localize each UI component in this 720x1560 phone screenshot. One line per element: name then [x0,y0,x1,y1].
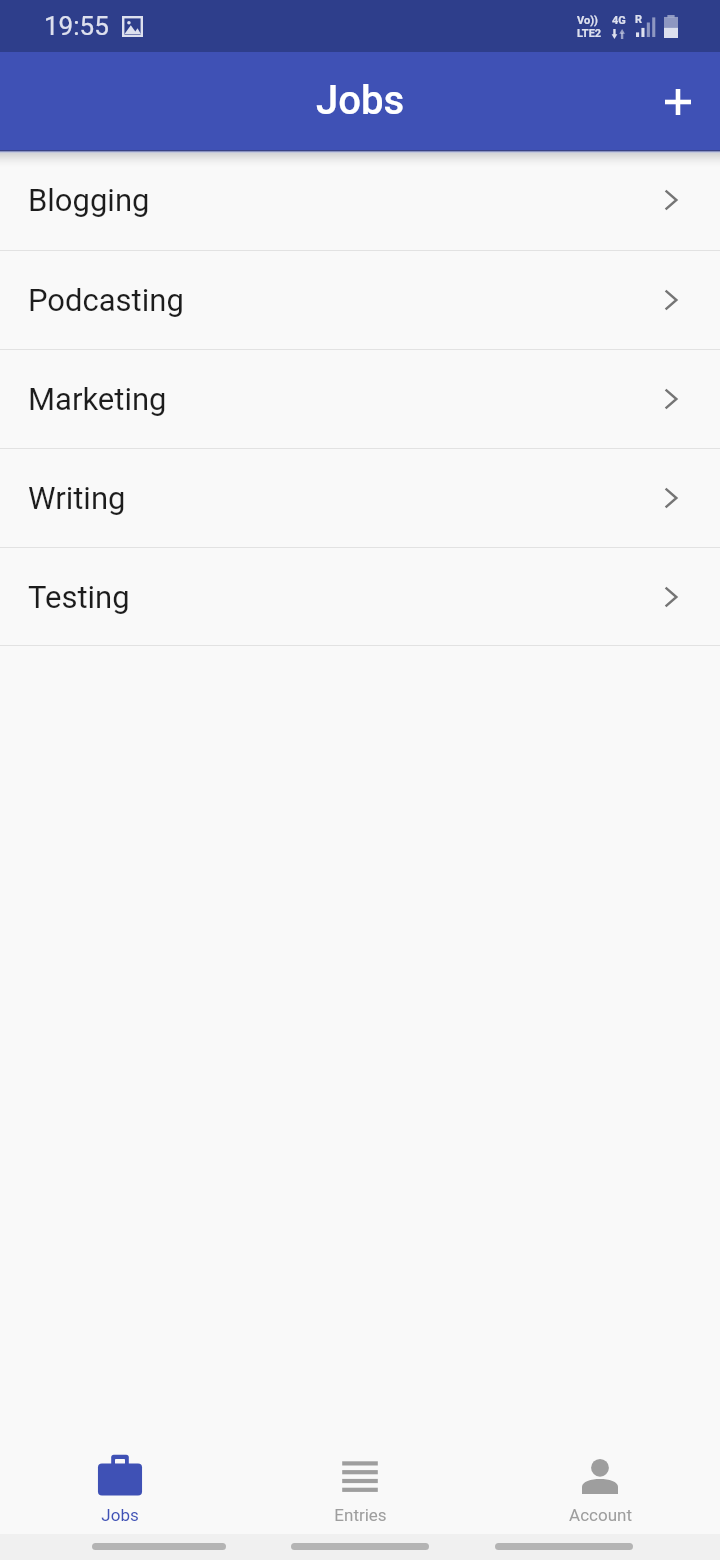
button[interactable]: Recent apps [495,1543,633,1550]
staticText: 4G [612,14,626,27]
staticText: Marketing [28,381,167,417]
button[interactable]: Back [92,1543,226,1550]
staticText: Jobs [316,77,405,124]
button[interactable]: Podcasting [0,251,720,350]
button[interactable]: Marketing [0,350,720,449]
staticText: Entries [334,1505,387,1525]
staticText: Blogging [28,182,150,218]
button[interactable]: Testing [0,548,720,646]
button[interactable]: Blogging [0,150,720,251]
staticText: Podcasting [28,282,184,318]
staticText: Writing [28,480,126,516]
staticText: Account [569,1505,632,1525]
staticText: Vo)) [577,14,598,27]
button[interactable]: Add job [648,71,708,131]
button[interactable]: Writing [0,449,720,548]
button[interactable]: Home [291,1543,429,1550]
button[interactable]: Account [480,1424,720,1534]
staticText: 19:55 [44,11,109,41]
staticText: Testing [28,579,130,615]
staticText: LTE2 [577,27,602,40]
button[interactable]: Entries [240,1424,480,1534]
button[interactable]: Jobs [0,1424,240,1534]
staticText: Jobs [101,1505,139,1525]
staticText: R [635,13,643,26]
